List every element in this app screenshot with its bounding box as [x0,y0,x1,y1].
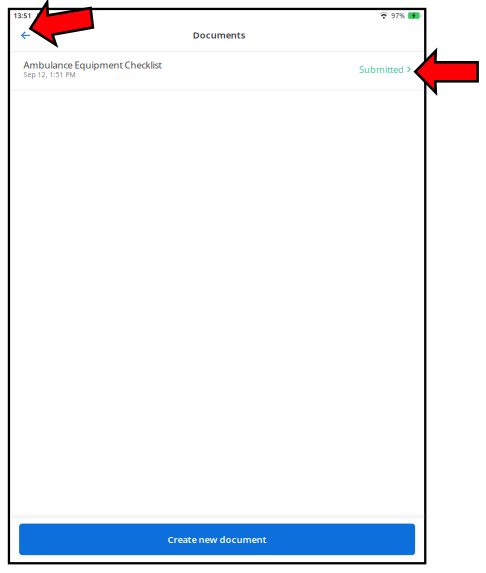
staticText: 97% [391,11,405,20]
staticText: Documents [193,29,246,41]
staticText: MTN [37,11,52,20]
button[interactable]: Create new document [19,524,415,555]
staticText: 13:51 [14,11,32,20]
button[interactable]: Ambulance Equipment Checklist [10,52,424,90]
staticText: Submitted [359,63,404,76]
staticText: Create new document [168,533,267,546]
staticText: Sep 12, 1:51 PM [23,70,75,79]
staticText: Ambulance Equipment Checklist [23,59,161,71]
button[interactable]: Back [15,25,37,47]
